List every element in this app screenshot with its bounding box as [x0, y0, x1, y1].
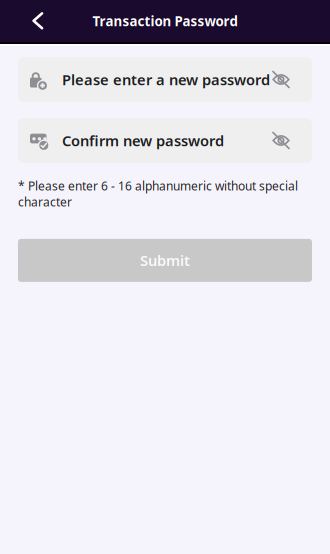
- staticText: Transaction Password: [92, 12, 237, 30]
- button[interactable]: Submit: [18, 239, 312, 282]
- staticText: Confirm new password: [62, 131, 224, 150]
- button[interactable]: Show password: [263, 57, 312, 102]
- staticText: * Please enter 6 - 16 alphanumeric witho…: [18, 178, 298, 210]
- button[interactable]: Show confirmation password: [263, 118, 312, 163]
- staticText: Please enter a new password: [62, 70, 270, 89]
- staticText: Submit: [140, 251, 190, 270]
- button[interactable]: Back: [0, 0, 76, 42]
